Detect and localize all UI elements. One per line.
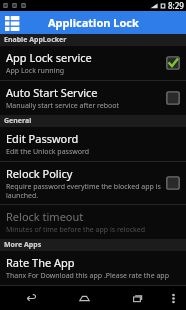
staticText: Relock timeout	[6, 209, 84, 224]
staticText: Auto Start Service	[6, 85, 98, 100]
staticText: Thanx For Download this app .Please rate…	[6, 271, 169, 281]
button[interactable]: Auto Start Service	[0, 81, 186, 115]
button[interactable]: Checked	[165, 55, 181, 71]
staticText: Rate The App	[6, 255, 75, 270]
staticText: More Apps	[4, 240, 42, 250]
button[interactable]: App icon	[3, 14, 21, 32]
button[interactable]: Relock timeout	[0, 205, 186, 239]
staticText: General	[4, 116, 32, 126]
staticText: Relock Policy	[6, 166, 73, 181]
button[interactable]: More options	[164, 286, 182, 310]
staticText: 8:29	[168, 0, 184, 11]
button[interactable]: Relock Policy	[0, 162, 186, 204]
button[interactable]: Back	[4, 286, 58, 310]
button[interactable]: Home	[58, 286, 111, 310]
staticText: App Lock running	[6, 66, 65, 76]
staticText: Application Lock	[48, 15, 139, 30]
staticText: Manually start service after reboot	[6, 101, 120, 111]
button[interactable]: Edit Password	[0, 127, 186, 161]
staticText: Require password everytime the blocked a…	[6, 182, 161, 200]
button[interactable]: Recent apps	[111, 286, 164, 310]
staticText: Edit Password	[6, 131, 79, 146]
staticText: Minutes of time before the app is relock…	[6, 225, 146, 235]
button[interactable]: Unchecked	[165, 90, 181, 106]
button[interactable]: App Lock service	[0, 46, 186, 80]
button[interactable]: Rate The App	[0, 251, 186, 285]
staticText: App Lock service	[6, 50, 92, 65]
staticText: Edit the Unlock password	[6, 147, 90, 157]
button[interactable]: Unchecked	[165, 175, 181, 191]
staticText: Enable AppLocker	[4, 35, 67, 45]
